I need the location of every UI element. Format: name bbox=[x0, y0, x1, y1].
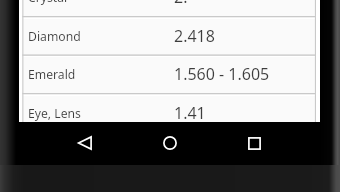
staticText: 2. bbox=[174, 0, 188, 8]
staticText: 1.560 - 1.605 bbox=[174, 63, 270, 85]
button[interactable]: Diamond bbox=[23, 19, 315, 54]
staticText: Eye, Lens bbox=[28, 105, 81, 122]
button[interactable]: Home bbox=[153, 126, 187, 160]
button[interactable]: Crystal bbox=[23, 0, 315, 15]
staticText: Crystal bbox=[28, 0, 68, 6]
button[interactable]: Back bbox=[68, 126, 102, 160]
staticText: Emerald bbox=[28, 66, 76, 83]
button[interactable]: Recent apps bbox=[237, 126, 271, 160]
staticText: Diamond bbox=[28, 28, 81, 45]
button[interactable]: Eye, Lens bbox=[23, 96, 315, 122]
staticText: 2.418 bbox=[174, 25, 215, 47]
button[interactable]: Emerald bbox=[23, 57, 315, 92]
staticText: 1.41 bbox=[174, 102, 206, 122]
